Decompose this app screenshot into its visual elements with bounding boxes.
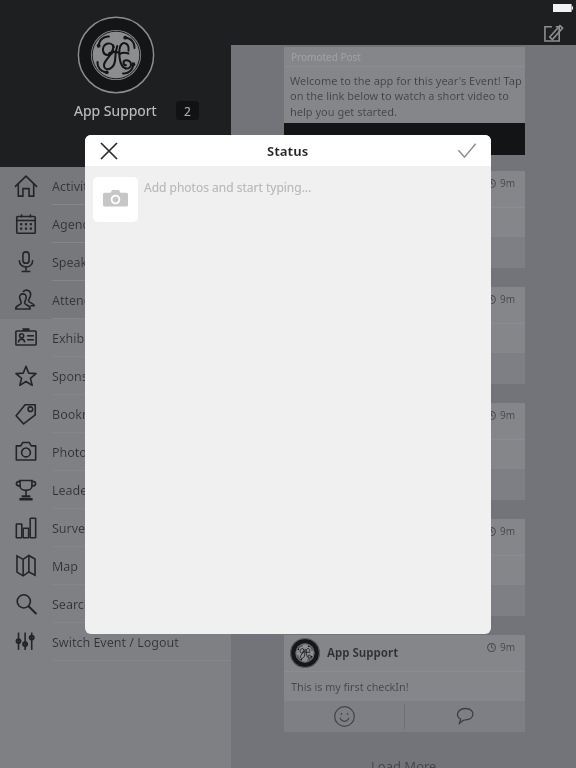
button[interactable]: Attendees bbox=[0, 281, 231, 319]
staticText: Search bbox=[52, 596, 92, 613]
button[interactable]: New post bbox=[541, 20, 565, 44]
staticText: Welcome to the app for this year's Event… bbox=[290, 73, 525, 120]
button[interactable]: Speakers bbox=[0, 243, 231, 281]
button[interactable]: Activity bbox=[0, 167, 231, 205]
button[interactable]: Comment bbox=[405, 353, 525, 384]
button[interactable]: Surveys bbox=[0, 509, 231, 547]
button[interactable]: Load More bbox=[231, 757, 576, 768]
staticText: App Support bbox=[74, 101, 157, 120]
button[interactable]: Map bbox=[0, 547, 231, 585]
staticText: Promoted Post bbox=[291, 50, 361, 64]
staticText: Sponsors bbox=[52, 368, 107, 385]
button[interactable]: Switch Event / Logout bbox=[0, 623, 231, 661]
staticText: 9m bbox=[500, 292, 516, 306]
staticText: 9m bbox=[500, 524, 516, 538]
staticText: Switch Event / Logout bbox=[52, 634, 179, 651]
button[interactable]: Promoted Post bbox=[284, 47, 525, 155]
button[interactable]: Add photo bbox=[93, 177, 138, 222]
button[interactable]: Leaderboard bbox=[0, 471, 231, 509]
staticText: Bookmarks bbox=[52, 406, 119, 423]
button[interactable]: Bookmarks bbox=[0, 395, 231, 433]
staticText: Add photos and start typing... bbox=[144, 179, 312, 195]
button[interactable]: React bbox=[284, 701, 404, 732]
button[interactable]: Comment bbox=[405, 469, 525, 500]
staticText: 9m bbox=[500, 640, 516, 654]
staticText: 2 bbox=[184, 103, 191, 119]
staticText: Agenda bbox=[52, 216, 98, 233]
staticText: Leaderboard bbox=[52, 482, 128, 499]
staticText: Load More bbox=[371, 757, 437, 768]
staticText: App Support bbox=[327, 645, 399, 661]
staticText: Attendees bbox=[52, 292, 112, 309]
button[interactable]: Comment bbox=[405, 701, 525, 732]
button[interactable]: App Support bbox=[284, 287, 525, 384]
button[interactable]: App Support bbox=[284, 635, 525, 732]
staticText: Speakers bbox=[52, 254, 106, 271]
staticText: 9m bbox=[500, 408, 516, 422]
button[interactable]: Search bbox=[0, 585, 231, 623]
staticText: Activity bbox=[52, 178, 95, 195]
button[interactable]: Comment bbox=[405, 237, 525, 268]
staticText: Photos bbox=[52, 444, 93, 461]
staticText: Surveys bbox=[52, 520, 98, 537]
staticText: Map bbox=[52, 558, 79, 575]
button[interactable]: Photos bbox=[0, 433, 231, 471]
button[interactable]: Agenda bbox=[0, 205, 231, 243]
staticText: Status bbox=[267, 142, 309, 160]
button[interactable]: App Support bbox=[284, 519, 525, 616]
button[interactable]: Post status bbox=[453, 137, 481, 165]
button[interactable]: 2 bbox=[176, 101, 199, 120]
button[interactable]: Sponsors bbox=[0, 357, 231, 395]
button[interactable]: Comment bbox=[405, 585, 525, 616]
button[interactable]: App Support bbox=[284, 171, 525, 268]
button[interactable]: Close bbox=[95, 137, 123, 165]
button[interactable]: Exhibitors bbox=[0, 319, 231, 357]
staticText: This is my first checkIn! bbox=[291, 679, 409, 694]
staticText: 9m bbox=[500, 176, 516, 190]
staticText: Exhibitors bbox=[52, 330, 111, 347]
button[interactable]: App Support bbox=[284, 403, 525, 500]
